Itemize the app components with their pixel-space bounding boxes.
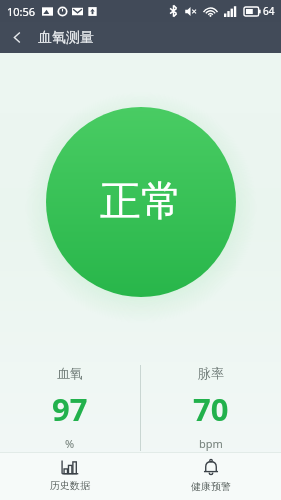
staticText: bpm — [199, 436, 223, 451]
staticText: 正常 — [100, 176, 182, 228]
staticText: 血氧 — [57, 365, 83, 381]
staticText: 血氧测量 — [38, 29, 94, 47]
button[interactable]: Back — [0, 22, 34, 53]
staticText: 97 — [52, 388, 88, 430]
staticText: 70 — [193, 388, 229, 430]
button[interactable]: 健康预警 — [140, 453, 281, 500]
staticText: 历史数据 — [50, 479, 90, 492]
button[interactable]: 正常 — [46, 107, 236, 297]
staticText: 10:56 — [7, 4, 36, 19]
staticText: 健康预警 — [191, 480, 231, 493]
staticText: 脉率 — [198, 365, 224, 381]
button[interactable]: 历史数据 — [0, 453, 140, 500]
staticText: % — [65, 436, 75, 451]
staticText: 64 — [263, 4, 275, 18]
